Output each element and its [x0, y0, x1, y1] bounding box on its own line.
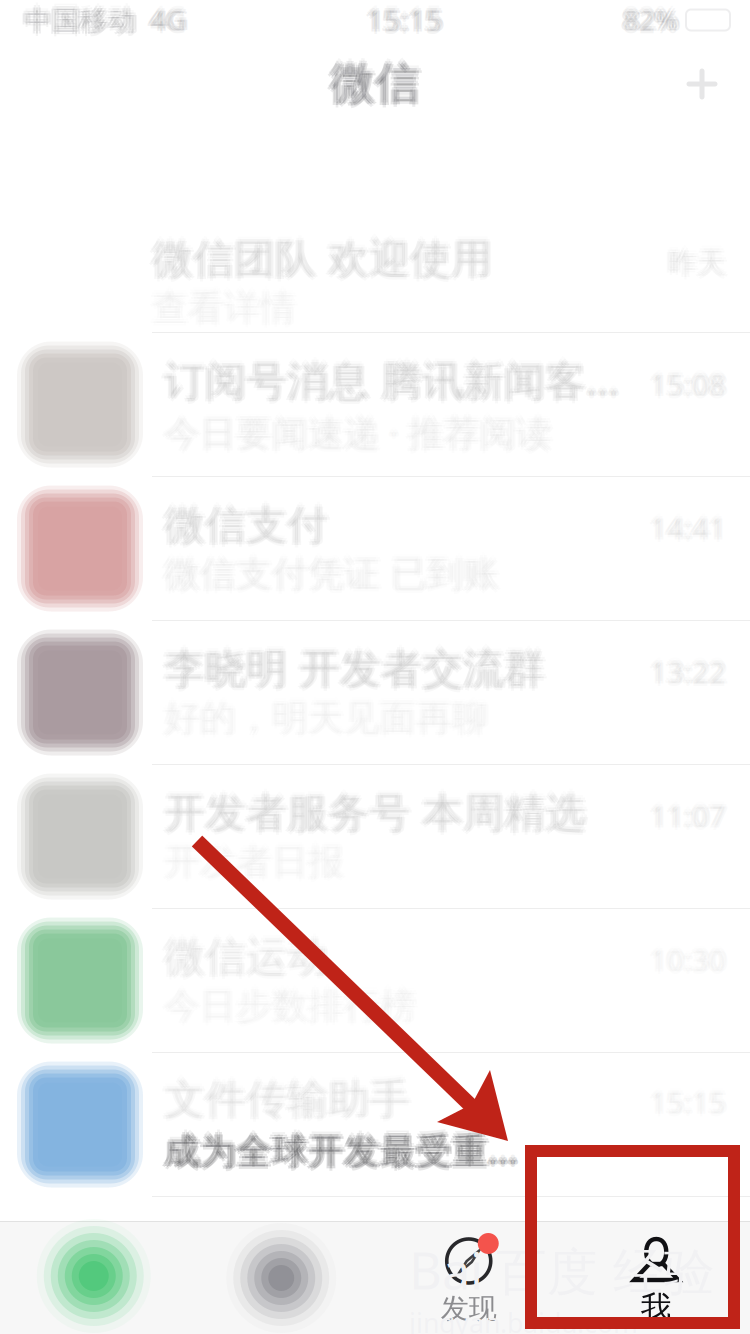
- staticText: 文件传输助手: [166, 1071, 412, 1123]
- staticText: 成为全球开发最受重...: [164, 1128, 518, 1177]
- staticText: 11:07: [648, 794, 724, 834]
- staticText: 微信团队 欢迎使用: [149, 234, 489, 286]
- staticText: 李晓明 开发者交流群: [164, 639, 545, 691]
- staticText: 微信运动: [162, 929, 326, 981]
- staticText: 昨天: [668, 245, 726, 282]
- staticText: 13:22: [650, 652, 726, 692]
- staticText: 好的，明天见面再聊: [164, 698, 488, 744]
- staticText: 今日步数排行榜: [164, 986, 416, 1032]
- staticText: 微信: [327, 55, 417, 112]
- staticText: 成为全球开发最受重...: [167, 1126, 521, 1175]
- staticText: 订阅号消息 腾讯新闻客户端: [164, 352, 642, 408]
- staticText: 微信团队 欢迎使用: [152, 229, 492, 281]
- staticText: 15:15: [648, 1080, 724, 1120]
- staticText: 11:07: [650, 796, 726, 836]
- staticText: 微信支付: [166, 497, 330, 549]
- staticText: 查看详情: [152, 281, 296, 326]
- staticText: 11:07: [650, 791, 726, 831]
- staticText: 15:15: [364, 0, 440, 37]
- staticText: 李晓明 开发者交流群: [162, 641, 543, 693]
- staticText: 订阅号消息 腾讯新闻客户端: [164, 354, 642, 411]
- staticText: 文件传输助手: [161, 1074, 407, 1126]
- button[interactable]: New chat: [654, 40, 750, 128]
- staticText: 微信支付: [164, 500, 328, 552]
- staticText: 82%: [623, 0, 678, 34]
- staticText: 昨天: [666, 243, 724, 280]
- staticText: 微信支付: [167, 500, 331, 552]
- staticText: 订阅号消息 腾讯新闻客户端: [164, 347, 642, 403]
- staticText: 15:15: [363, 0, 439, 40]
- staticText: 13:22: [648, 650, 724, 690]
- button[interactable]: 订阅号消息 腾讯新闻客户端: [0, 333, 750, 477]
- staticText: 15:15: [653, 1082, 729, 1122]
- staticText: 开发者服务号 本周精选: [162, 785, 584, 837]
- button[interactable]: 微信: [0, 1222, 187, 1334]
- staticText: 10:30: [653, 940, 729, 980]
- button[interactable]: 我: [562, 1222, 750, 1334]
- staticText: 微信运动: [166, 929, 330, 981]
- staticText: 微信: [330, 58, 420, 115]
- staticText: 微信运动: [164, 934, 328, 986]
- button[interactable]: 文件传输助手: [0, 1053, 750, 1197]
- staticText: 中国移动 4G: [26, 0, 188, 36]
- staticText: 微信支付: [164, 502, 328, 554]
- staticText: 15:15: [652, 1080, 728, 1120]
- button[interactable]: 李晓明 开发者交流群: [0, 621, 750, 765]
- staticText: 微信运动: [164, 927, 328, 979]
- staticText: 15:08: [648, 362, 724, 402]
- staticText: 微信团队 欢迎使用: [152, 234, 492, 286]
- staticText: 李晓明 开发者交流群: [166, 641, 547, 693]
- staticText: 今日步数排行榜: [166, 981, 418, 1027]
- staticText: 中国移动 4G: [24, 0, 186, 34]
- staticText: 成为全球开发最受重...: [164, 1126, 518, 1175]
- staticText: 开发者服务号 本周精选: [167, 788, 589, 840]
- button[interactable]: 发现: [375, 1222, 562, 1334]
- staticText: 微信支付: [162, 497, 326, 549]
- staticText: 15:15: [366, 0, 442, 40]
- staticText: 好的，明天见面再聊: [164, 696, 488, 741]
- staticText: 微信支付凭证 已到账: [167, 552, 502, 597]
- staticText: 开发者日报: [164, 835, 344, 880]
- staticText: 微信支付凭证 已到账: [164, 552, 499, 597]
- staticText: 微信: [330, 55, 420, 112]
- button[interactable]: 微信运动: [0, 909, 750, 1053]
- staticText: 15:15: [650, 1085, 726, 1125]
- staticText: 好的，明天见面再聊: [164, 691, 488, 736]
- staticText: 今日步数排行榜: [167, 984, 419, 1029]
- staticText: 14:41: [648, 506, 724, 546]
- staticText: 发现: [441, 1291, 497, 1326]
- staticText: 微信支付凭证 已到账: [164, 554, 499, 600]
- staticText: 李晓明 开发者交流群: [161, 644, 542, 696]
- button[interactable]: 微信支付: [0, 477, 750, 621]
- staticText: 微信团队 欢迎使用: [150, 231, 490, 283]
- button[interactable]: 通讯录: [187, 1222, 375, 1334]
- staticText: 微信: [328, 53, 418, 110]
- staticText: 15:15: [366, 2, 442, 42]
- staticText: 15:08: [650, 360, 726, 400]
- staticText: 好的，明天见面再聊: [161, 696, 485, 741]
- staticText: 15:08: [647, 365, 723, 405]
- staticText: 13:22: [650, 647, 726, 687]
- staticText: jingyan.baidu.com: [409, 1304, 638, 1334]
- staticText: 微信支付凭证 已到账: [161, 552, 496, 597]
- staticText: 13:22: [650, 655, 726, 695]
- staticText: 14:41: [650, 503, 726, 543]
- staticText: 82%: [626, 1, 681, 39]
- staticText: 13:22: [653, 652, 729, 692]
- staticText: 82%: [621, 0, 676, 36]
- staticText: 查看详情: [154, 283, 298, 329]
- staticText: 成为全球开发最受重...: [162, 1123, 516, 1172]
- staticText: 开发者服务号 本周精选: [164, 788, 586, 840]
- staticText: 微信运动: [167, 932, 331, 984]
- staticText: 中国移动 4G: [24, 1, 186, 39]
- staticText: 微信: [333, 55, 423, 112]
- staticText: 10:30: [650, 943, 726, 983]
- staticText: 微信: [332, 53, 422, 110]
- staticText: 订阅号消息 腾讯新闻客户端: [166, 349, 644, 406]
- button[interactable]: 开发者服务号 本周精选: [0, 765, 750, 909]
- staticText: 82%: [623, 1, 678, 39]
- staticText: 82%: [623, 3, 678, 41]
- staticText: 查看详情: [152, 286, 296, 331]
- staticText: 微信支付: [164, 495, 328, 547]
- button[interactable]: 微信团队 欢迎使用: [0, 233, 750, 333]
